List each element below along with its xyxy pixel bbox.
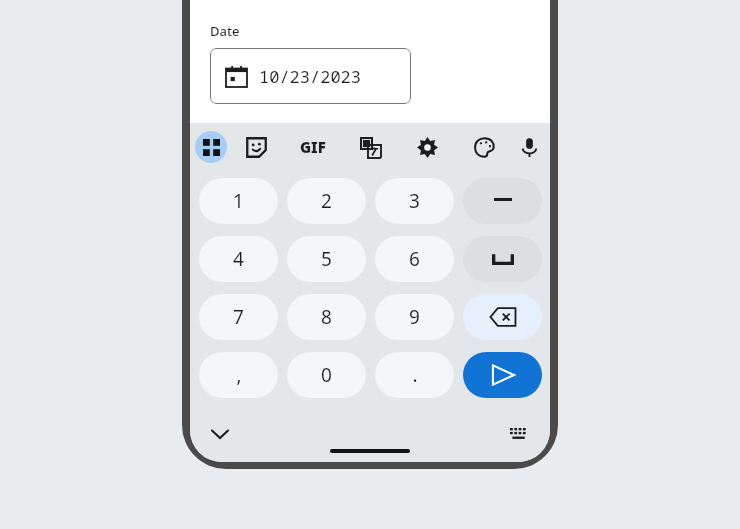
staticText: 4 [233, 246, 244, 272]
staticText: 0 [321, 362, 332, 388]
button[interactable]: Dash [463, 178, 542, 224]
button[interactable]: . [375, 352, 454, 398]
staticText: 9 [409, 304, 420, 330]
button[interactable]: Space [463, 236, 542, 282]
button[interactable]: Change keyboard [506, 420, 534, 448]
staticText: 2 [321, 188, 332, 214]
staticText: 5 [321, 246, 332, 272]
button[interactable]: 10/23/2023 [210, 48, 411, 104]
button[interactable]: 5 [287, 236, 366, 282]
button[interactable]: 7 [199, 294, 278, 340]
button[interactable]: Stickers [240, 131, 272, 163]
button[interactable]: Translate [354, 131, 386, 163]
button[interactable]: Hide keyboard [206, 420, 234, 448]
staticText: 6 [409, 246, 420, 272]
button[interactable]: Backspace [463, 294, 542, 340]
staticText: 10/23/2023 [259, 65, 361, 88]
staticText: 3 [409, 188, 420, 214]
button[interactable]: Voice input [513, 131, 545, 163]
staticText: , [236, 362, 242, 388]
button[interactable]: Send [463, 352, 542, 398]
staticText: GIF [300, 137, 326, 157]
button[interactable]: 8 [287, 294, 366, 340]
button[interactable]: 0 [287, 352, 366, 398]
button[interactable]: 4 [199, 236, 278, 282]
button[interactable]: , [199, 352, 278, 398]
staticText: 1 [233, 188, 244, 214]
staticText: Date [210, 22, 240, 40]
button[interactable]: GIF [293, 131, 333, 163]
button[interactable]: 6 [375, 236, 454, 282]
staticText: 7 [233, 304, 244, 330]
button[interactable]: Theme [468, 131, 500, 163]
staticText: 8 [321, 304, 332, 330]
button[interactable]: Symbols [195, 131, 227, 163]
staticText: . [412, 362, 418, 388]
button[interactable]: 9 [375, 294, 454, 340]
button[interactable]: 1 [199, 178, 278, 224]
button[interactable]: Settings [411, 131, 443, 163]
button[interactable]: 3 [375, 178, 454, 224]
button[interactable]: 2 [287, 178, 366, 224]
